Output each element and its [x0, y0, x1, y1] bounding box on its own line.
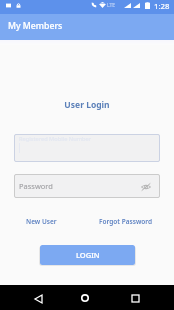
button[interactable]: New User	[26, 217, 57, 226]
staticText: 1:28	[154, 1, 170, 12]
button[interactable]: Back	[28, 288, 49, 309]
button[interactable]: LOGIN	[40, 245, 135, 265]
staticText: New User	[26, 217, 57, 226]
staticText: LTE	[107, 2, 116, 9]
button[interactable]: Registered Mobile Number	[14, 134, 160, 162]
staticText: Password	[19, 181, 53, 191]
button[interactable]: Password	[14, 174, 160, 198]
staticText: Forgot Password	[99, 217, 153, 226]
button[interactable]: Home	[75, 288, 95, 308]
button[interactable]: Recents	[125, 288, 145, 308]
button[interactable]: Forgot Password	[99, 217, 153, 226]
staticText: User Login	[0, 99, 174, 111]
staticText: LOGIN	[76, 250, 100, 260]
staticText: My Members	[8, 20, 63, 32]
staticText: Registered Mobile Number	[19, 135, 92, 143]
button[interactable]: Toggle password visibility	[139, 180, 152, 193]
